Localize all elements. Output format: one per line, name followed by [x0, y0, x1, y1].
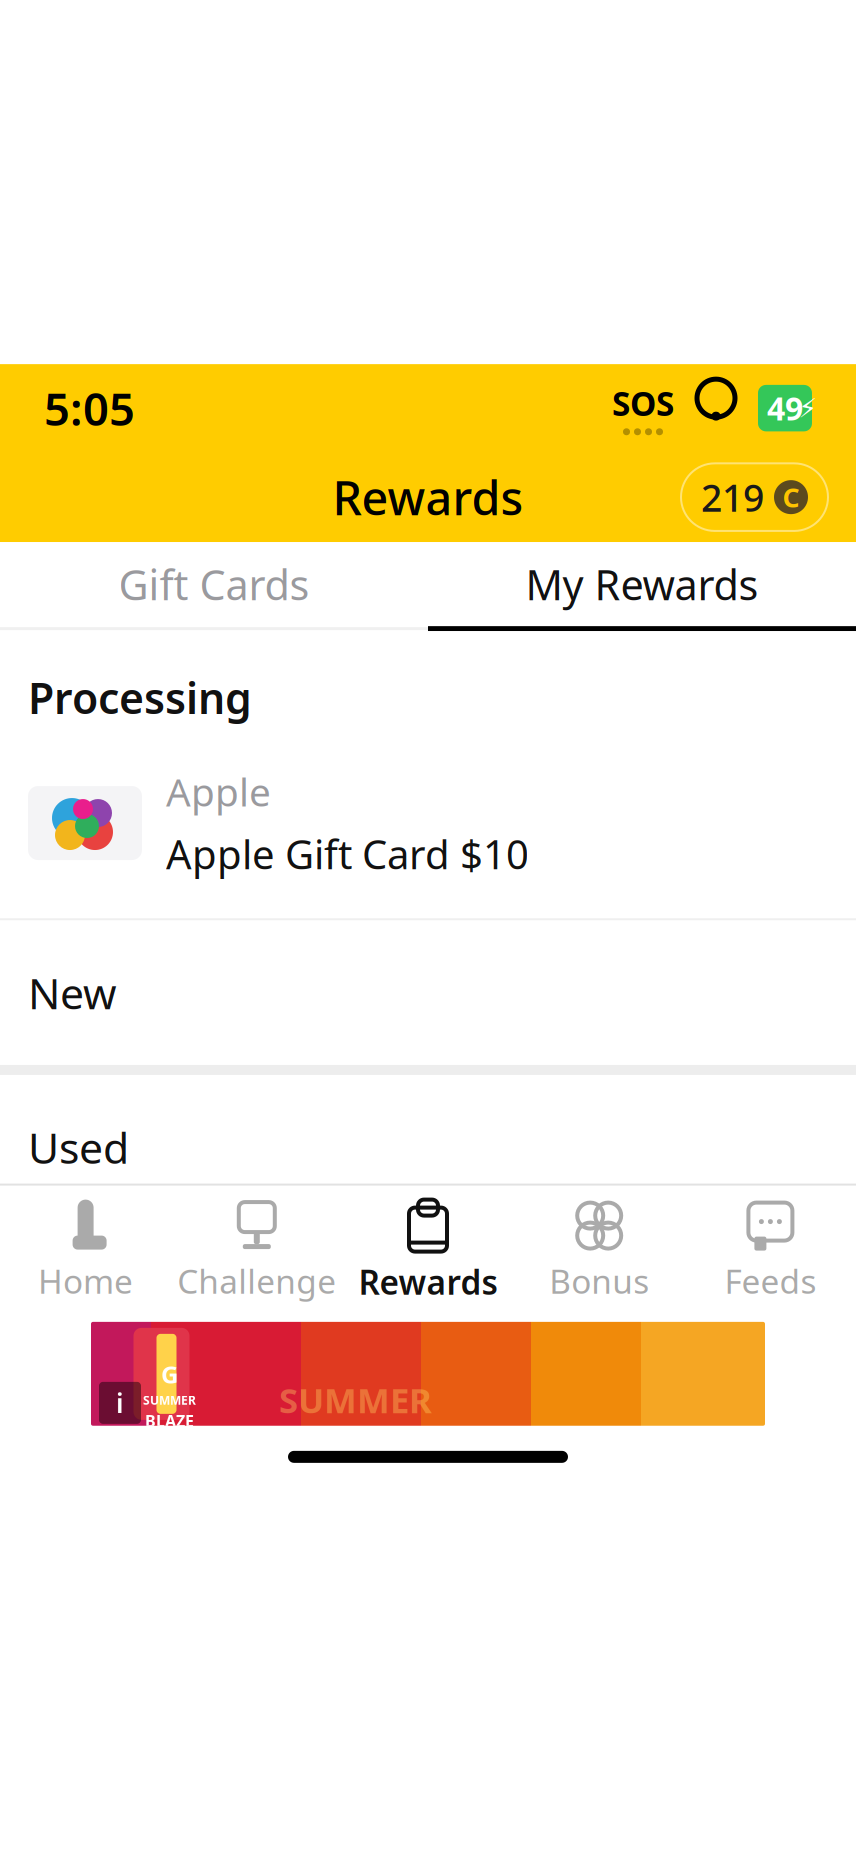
staticText: 219 [701, 472, 764, 522]
staticText: Bonus [549, 1259, 649, 1303]
staticText: 49 [767, 387, 803, 429]
button[interactable]: Home [0, 1187, 171, 1313]
staticText: Rewards [332, 466, 523, 528]
button[interactable]: Feeds [685, 1187, 856, 1313]
button[interactable]: Rewards [342, 1186, 514, 1314]
staticText: Processing [28, 669, 252, 726]
button[interactable]: Apple [0, 750, 856, 896]
staticText: Rewards [358, 1260, 497, 1304]
button[interactable]: Advertisement [91, 1322, 765, 1426]
button[interactable]: Gift Cards [0, 542, 428, 626]
button[interactable]: Bonus [514, 1187, 685, 1313]
staticText: Apple [166, 766, 271, 817]
button[interactable]: My Rewards [428, 542, 856, 626]
staticText: My Rewards [525, 557, 758, 612]
staticText: Feeds [724, 1259, 816, 1303]
staticText: 5:05 [44, 378, 135, 438]
staticText: Used [28, 1119, 129, 1176]
button[interactable]: Challenge [171, 1187, 342, 1313]
staticText: Apple Gift Card $10 [166, 827, 529, 880]
staticText: SUMMER [279, 1377, 432, 1423]
staticText: Home [38, 1259, 133, 1303]
button[interactable]: 219 [681, 463, 828, 531]
staticText: New [28, 964, 117, 1021]
staticText: SUMMER [143, 1392, 196, 1408]
staticText: i [116, 1385, 124, 1420]
staticText: ⚡︎ [798, 393, 817, 423]
staticText: C [782, 479, 799, 515]
staticText: Challenge [177, 1259, 336, 1303]
staticText: Gift Cards [118, 557, 309, 612]
staticText: G [161, 1358, 178, 1390]
staticText: SOS [612, 381, 674, 425]
staticText: BLAZE [145, 1410, 194, 1431]
